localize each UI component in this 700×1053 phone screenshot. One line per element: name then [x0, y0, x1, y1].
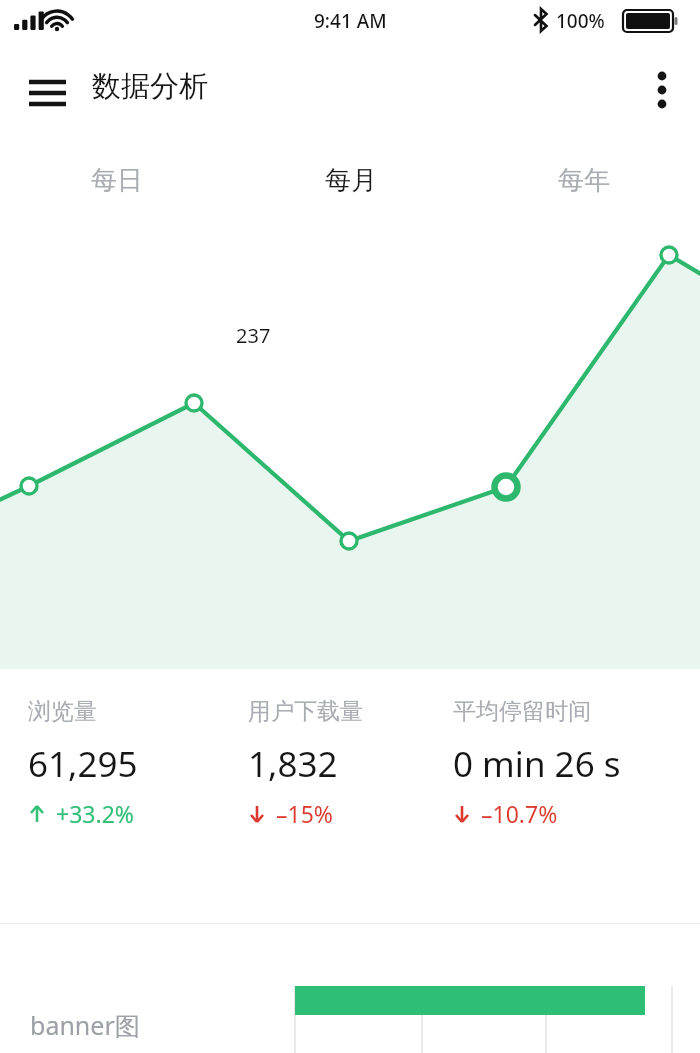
button[interactable]: 浏览量 [28, 697, 138, 829]
button[interactable]: 每日 [0, 147, 234, 213]
staticText: –15% [276, 798, 333, 829]
staticText: 每月 [325, 164, 377, 197]
staticText: 每日 [91, 164, 143, 197]
staticText: 0 min 26 s [453, 740, 621, 788]
staticText: 数据分析 [92, 68, 208, 105]
staticText: 9:41 AM [314, 8, 387, 34]
staticText: 每年 [558, 164, 610, 197]
button[interactable]: 237 [230, 322, 276, 345]
staticText: 用户下载量 [248, 697, 363, 726]
staticText: 平均停留时间 [453, 697, 591, 726]
staticText: 浏览量 [28, 697, 97, 726]
button[interactable]: 平均停留时间 [453, 697, 621, 829]
button[interactable]: Menu [18, 61, 78, 111]
staticText: +33.2% [56, 798, 134, 829]
button[interactable]: 用户下载量 [248, 697, 363, 829]
staticText: 100% [556, 8, 605, 34]
staticText: 237 [236, 322, 271, 345]
staticText: 61,295 [28, 740, 138, 788]
button[interactable]: 每月 [272, 147, 430, 213]
staticText: –10.7% [481, 798, 558, 829]
button[interactable]: More options [638, 61, 686, 111]
staticText: banner图 [30, 1008, 140, 1042]
staticText: 1,832 [248, 740, 338, 788]
button[interactable]: 每年 [467, 147, 700, 213]
